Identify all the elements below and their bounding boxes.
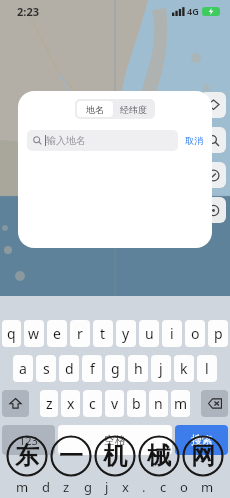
- button[interactable]: z: [40, 390, 58, 417]
- staticText: g: [84, 478, 92, 496]
- staticText: 一: [59, 441, 83, 471]
- button[interactable]: h: [128, 355, 148, 382]
- staticText: 搜索: [191, 433, 213, 447]
- staticText: a: [19, 359, 27, 378]
- button[interactable]: j: [151, 355, 171, 382]
- staticText: m: [174, 394, 188, 413]
- button[interactable]: w: [24, 320, 44, 347]
- staticText: d: [65, 359, 74, 378]
- staticText: j: [159, 359, 163, 378]
- button[interactable]: m: [171, 390, 190, 417]
- button[interactable]: 输入地名: [27, 130, 178, 151]
- staticText: v: [111, 394, 119, 413]
- staticText: x: [122, 478, 129, 496]
- button[interactable]: 123: [2, 425, 55, 455]
- staticText: q: [7, 324, 16, 343]
- button[interactable]: e: [47, 320, 67, 347]
- button[interactable]: s: [36, 355, 56, 382]
- staticText: f: [90, 359, 95, 378]
- button[interactable]: r: [70, 320, 90, 347]
- staticText: m: [16, 478, 29, 496]
- button[interactable]: Search: [200, 127, 226, 153]
- button[interactable]: Locate: [200, 197, 226, 223]
- staticText: c: [89, 394, 96, 413]
- button[interactable]: a: [13, 355, 33, 382]
- button[interactable]: q: [2, 320, 21, 347]
- button[interactable]: 经纬度: [113, 101, 153, 117]
- staticText: 地名: [86, 104, 104, 115]
- button[interactable]: y: [116, 320, 136, 347]
- button[interactable]: l: [197, 355, 217, 382]
- staticText: b: [132, 394, 141, 413]
- button[interactable]: 地名: [77, 101, 113, 117]
- staticText: z: [46, 394, 53, 413]
- staticText: 取消: [185, 135, 203, 146]
- staticText: x: [67, 394, 75, 413]
- button[interactable]: n: [149, 390, 168, 417]
- staticText: 2:23: [17, 4, 39, 19]
- button[interactable]: c: [83, 390, 102, 417]
- staticText: d: [42, 478, 50, 496]
- staticText: g: [111, 359, 120, 378]
- staticText: o: [191, 324, 200, 343]
- button[interactable]: p: [208, 320, 228, 347]
- staticText: 4G: [187, 5, 199, 17]
- staticText: i: [170, 324, 174, 343]
- button[interactable]: 空格: [58, 425, 172, 455]
- staticText: c: [160, 478, 167, 496]
- staticText: u: [145, 324, 154, 343]
- staticText: e: [53, 324, 61, 343]
- staticText: w: [28, 324, 40, 343]
- button[interactable]: u: [139, 320, 159, 347]
- staticText: s: [43, 359, 50, 378]
- staticText: z: [63, 478, 70, 496]
- staticText: p: [214, 324, 223, 343]
- button[interactable]: v: [105, 390, 124, 417]
- staticText: 机: [103, 441, 127, 471]
- button[interactable]: Backspace: [201, 390, 228, 417]
- button[interactable]: Layers: [200, 92, 226, 118]
- button[interactable]: 取消: [183, 132, 205, 149]
- staticText: .: [142, 478, 146, 496]
- staticText: y: [122, 324, 130, 343]
- button[interactable]: 搜索: [175, 425, 228, 455]
- button[interactable]: Compass: [200, 162, 226, 188]
- staticText: 东: [15, 441, 39, 471]
- button[interactable]: g: [105, 355, 125, 382]
- button[interactable]: d: [59, 355, 79, 382]
- button[interactable]: o: [185, 320, 205, 347]
- button[interactable]: x: [61, 390, 80, 417]
- staticText: o: [180, 478, 188, 496]
- staticText: n: [154, 394, 163, 413]
- button[interactable]: Shift: [2, 390, 29, 417]
- staticText: t: [100, 324, 106, 343]
- button[interactable]: f: [82, 355, 102, 382]
- staticText: r: [77, 324, 83, 343]
- button[interactable]: b: [127, 390, 146, 417]
- staticText: m: [201, 478, 214, 496]
- button[interactable]: i: [162, 320, 182, 347]
- staticText: 械: [147, 441, 171, 471]
- staticText: k: [180, 359, 188, 378]
- staticText: j: [105, 478, 109, 496]
- staticText: 网: [191, 441, 215, 471]
- staticText: 空格: [104, 433, 126, 447]
- staticText: 经纬度: [120, 104, 147, 115]
- staticText: 输入地名: [46, 134, 86, 147]
- staticText: h: [134, 359, 143, 378]
- staticText: 123: [19, 433, 38, 448]
- button[interactable]: t: [93, 320, 113, 347]
- button[interactable]: k: [174, 355, 194, 382]
- staticText: l: [205, 359, 209, 378]
